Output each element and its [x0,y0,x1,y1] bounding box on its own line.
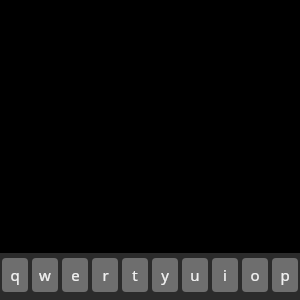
staticText: u [190,265,200,285]
button[interactable]: p [272,258,298,292]
button[interactable]: e [62,258,88,292]
button[interactable]: w [32,258,58,292]
staticText: y [161,265,169,285]
button[interactable]: o [242,258,268,292]
button[interactable]: i [212,258,238,292]
button[interactable]: y [152,258,178,292]
staticText: o [250,265,260,285]
button[interactable]: r [92,258,118,292]
button[interactable]: u [182,258,208,292]
staticText: w [39,265,51,285]
staticText: r [102,265,109,285]
staticText: t [132,265,138,285]
staticText: e [71,265,80,285]
staticText: i [223,265,227,285]
staticText: q [10,265,20,285]
button[interactable]: q [2,258,28,292]
button[interactable]: t [122,258,148,292]
staticText: p [280,265,290,285]
